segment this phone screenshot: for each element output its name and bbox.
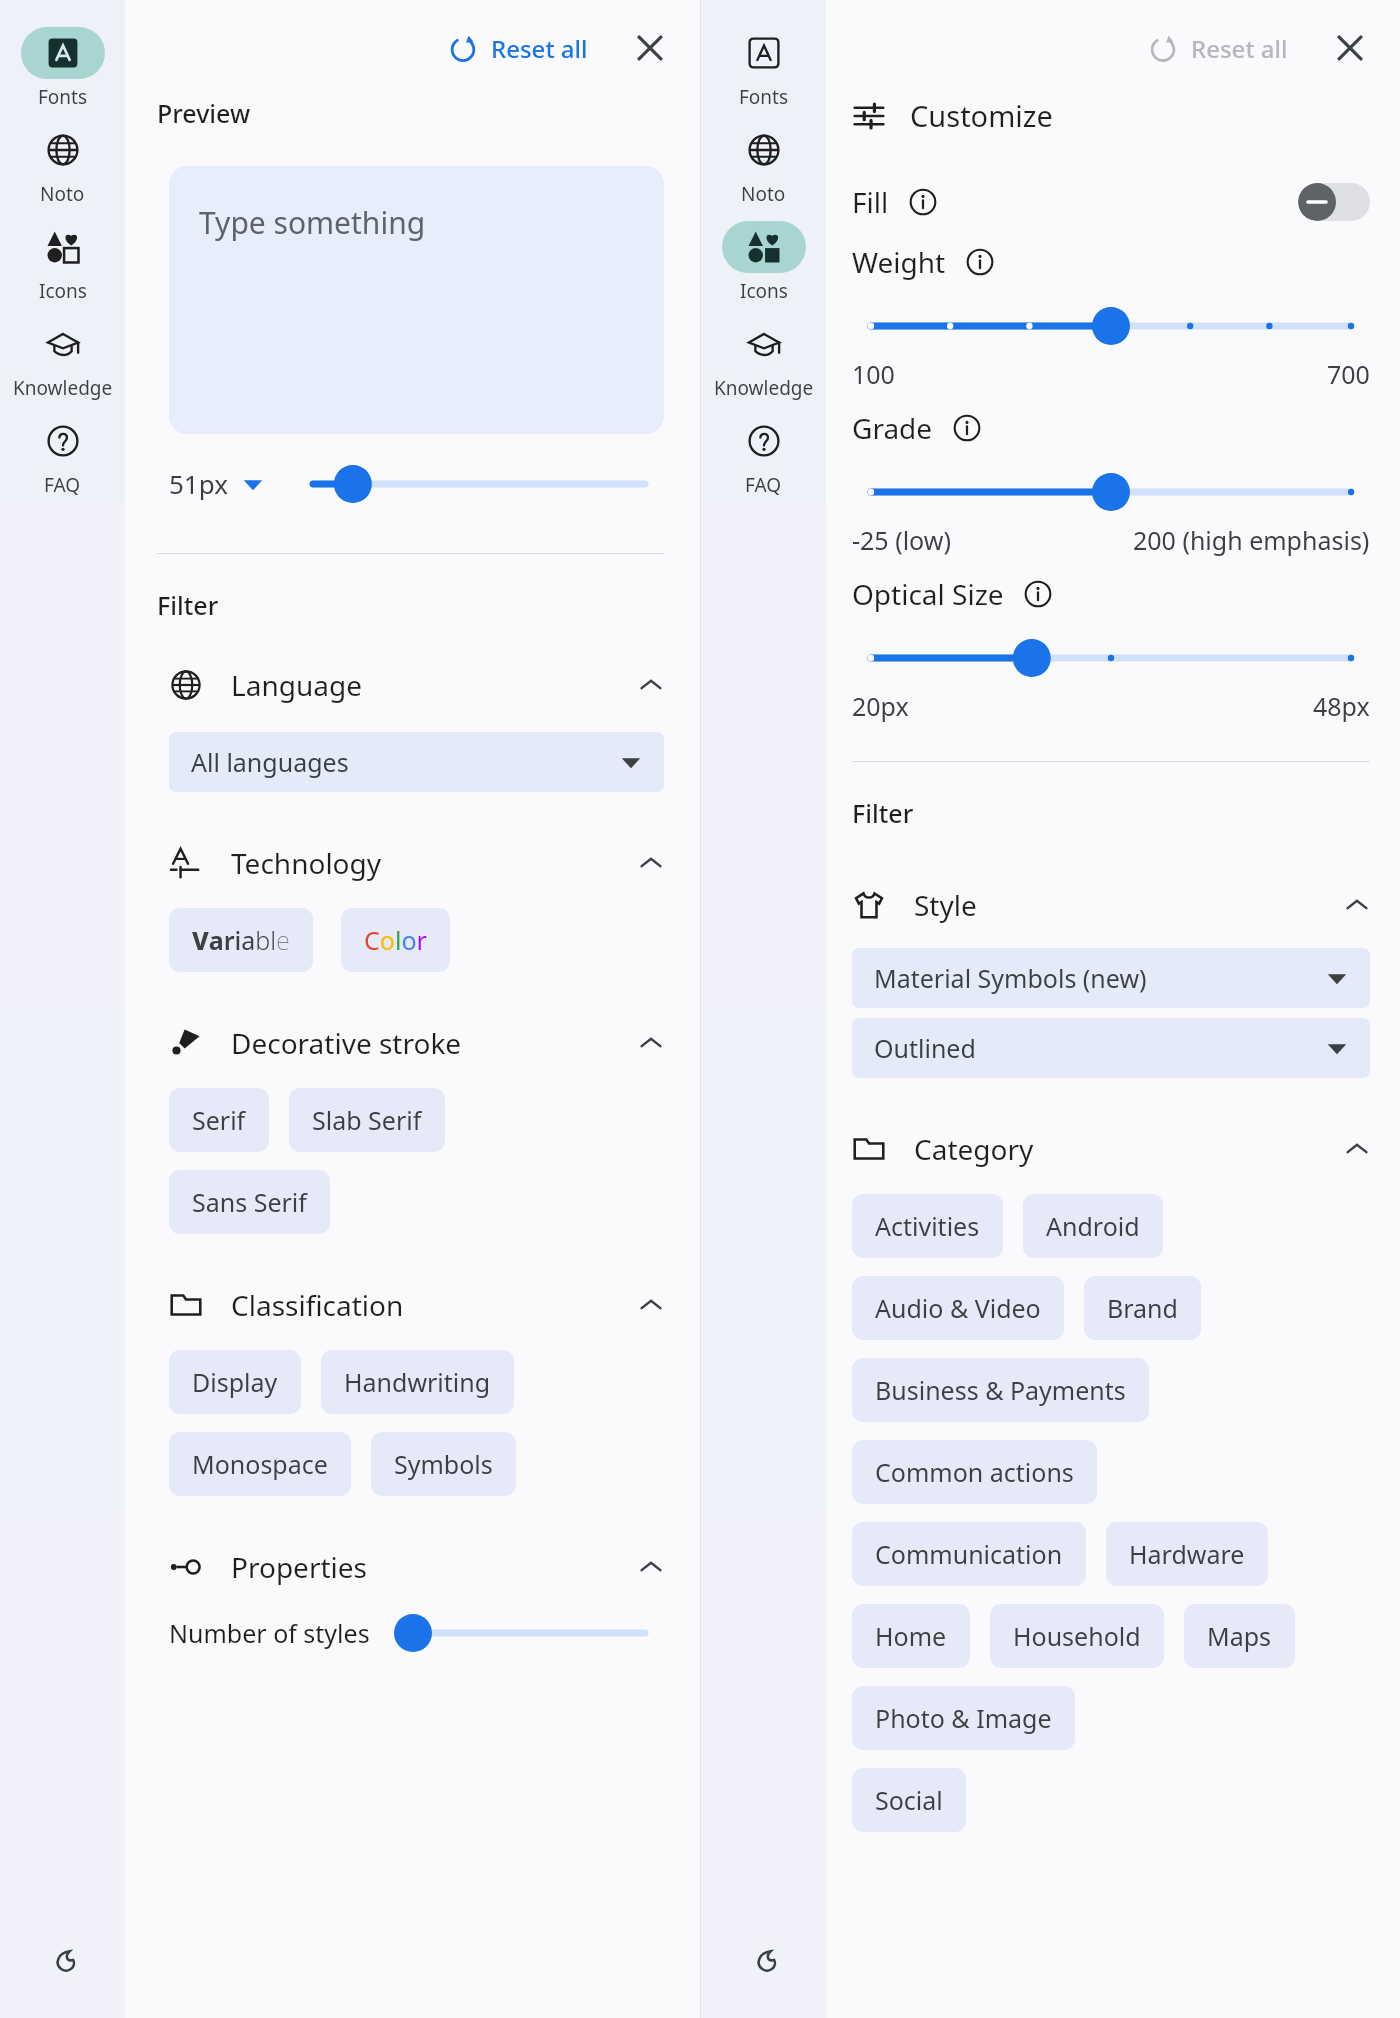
- button[interactable]: Slab Serif: [289, 1088, 445, 1152]
- staticText: FAQ: [745, 472, 782, 498]
- staticText: Business & Payments: [875, 1373, 1126, 1407]
- button[interactable]: Display: [169, 1350, 301, 1414]
- staticText: Fill: [852, 183, 889, 221]
- staticText: Display: [192, 1365, 278, 1399]
- button[interactable]: Sans Serif: [169, 1170, 330, 1234]
- button[interactable]: Optical Size: [852, 575, 1052, 613]
- button[interactable]: Material Symbols (new): [852, 948, 1370, 1008]
- staticText: Noto: [40, 181, 85, 207]
- button[interactable]: Properties: [169, 1548, 664, 1586]
- button[interactable]: Audio & Video: [852, 1276, 1064, 1340]
- button[interactable]: Activities: [852, 1194, 1003, 1258]
- staticText: Activities: [875, 1209, 980, 1243]
- button[interactable]: Type something: [169, 166, 664, 434]
- staticText: Type something: [199, 202, 426, 243]
- button[interactable]: Style: [852, 886, 1370, 924]
- button[interactable]: [852, 475, 1370, 509]
- button[interactable]: All languages: [169, 732, 664, 792]
- staticText: Communication: [875, 1537, 1063, 1571]
- staticText: Monospace: [192, 1447, 328, 1481]
- staticText: Hardware: [1129, 1537, 1245, 1571]
- staticText: 700: [1327, 357, 1370, 391]
- staticText: Classification: [231, 1286, 404, 1324]
- button[interactable]: Symbols: [371, 1432, 516, 1496]
- button[interactable]: Classification: [169, 1286, 664, 1324]
- button[interactable]: Close: [626, 24, 674, 72]
- staticText: Material Symbols (new): [874, 961, 1147, 995]
- button[interactable]: [394, 1616, 664, 1650]
- button[interactable]: [852, 641, 1370, 675]
- button[interactable]: Brand: [1084, 1276, 1201, 1340]
- staticText: Android: [1046, 1209, 1140, 1243]
- button[interactable]: Color: [341, 908, 450, 972]
- button[interactable]: Reset all: [1139, 26, 1296, 71]
- button[interactable]: Icons: [0, 221, 125, 318]
- button[interactable]: 51px: [169, 466, 264, 501]
- staticText: Decorative stroke: [231, 1024, 462, 1062]
- staticText: All languages: [191, 745, 349, 779]
- button[interactable]: Maps: [1184, 1604, 1295, 1668]
- button[interactable]: Social: [852, 1768, 966, 1832]
- staticText: Grade: [852, 409, 933, 447]
- staticText: Icons: [740, 278, 788, 304]
- button[interactable]: Variable: [169, 908, 313, 972]
- button[interactable]: Category: [852, 1130, 1370, 1168]
- button[interactable]: Noto: [0, 124, 125, 221]
- button[interactable]: Language: [169, 666, 664, 704]
- button[interactable]: Business & Payments: [852, 1358, 1149, 1422]
- button[interactable]: FAQ: [0, 415, 125, 512]
- staticText: Weight: [852, 243, 946, 281]
- staticText: FAQ: [44, 472, 81, 498]
- button[interactable]: Dark mode: [736, 1932, 792, 1988]
- button[interactable]: Home: [852, 1604, 970, 1668]
- button[interactable]: Photo & Image: [852, 1686, 1075, 1750]
- button[interactable]: Communication: [852, 1522, 1086, 1586]
- button[interactable]: Weight: [852, 243, 994, 281]
- button[interactable]: Handwriting: [321, 1350, 514, 1414]
- button[interactable]: Close: [1326, 24, 1374, 72]
- button[interactable]: Serif: [169, 1088, 269, 1152]
- button[interactable]: [294, 467, 664, 501]
- staticText: Optical Size: [852, 575, 1004, 613]
- staticText: Fonts: [739, 84, 789, 110]
- staticText: Filter: [157, 588, 219, 622]
- staticText: Symbols: [394, 1447, 493, 1481]
- button[interactable]: Reset all: [439, 26, 596, 71]
- staticText: Common actions: [875, 1455, 1074, 1489]
- staticText: Audio & Video: [875, 1291, 1041, 1325]
- staticText: 200 (high emphasis): [1133, 523, 1370, 557]
- staticText: 48px: [1313, 689, 1370, 723]
- button[interactable]: Household: [990, 1604, 1164, 1668]
- button[interactable]: Dark mode: [35, 1932, 91, 1988]
- staticText: Preview: [157, 96, 251, 130]
- button[interactable]: Hardware: [1106, 1522, 1268, 1586]
- button[interactable]: Grade: [852, 409, 981, 447]
- staticText: Sans Serif: [192, 1185, 307, 1219]
- staticText: Customize: [910, 96, 1053, 135]
- staticText: Reset all: [491, 32, 588, 65]
- button[interactable]: Outlined: [852, 1018, 1370, 1078]
- button[interactable]: Android: [1023, 1194, 1163, 1258]
- button[interactable]: Fill toggle: [1298, 183, 1370, 221]
- button[interactable]: Monospace: [169, 1432, 351, 1496]
- button[interactable]: Fill: [852, 183, 1370, 221]
- button[interactable]: Icons: [701, 221, 826, 318]
- staticText: Reset all: [1191, 32, 1288, 65]
- staticText: Icons: [39, 278, 87, 304]
- button[interactable]: Decorative stroke: [169, 1024, 664, 1062]
- button[interactable]: Technology: [169, 844, 664, 882]
- staticText: Color: [364, 923, 427, 957]
- button[interactable]: Knowledge: [0, 318, 125, 415]
- button[interactable]: [852, 309, 1370, 343]
- staticText: Language: [231, 666, 362, 704]
- staticText: Noto: [741, 181, 786, 207]
- button[interactable]: Fonts: [0, 27, 125, 124]
- button[interactable]: Common actions: [852, 1440, 1097, 1504]
- staticText: Home: [875, 1619, 947, 1653]
- button[interactable]: Fonts: [701, 27, 826, 124]
- button[interactable]: Knowledge: [701, 318, 826, 415]
- staticText: Handwriting: [344, 1365, 491, 1399]
- button[interactable]: Customize: [852, 96, 1053, 135]
- button[interactable]: FAQ: [701, 415, 826, 512]
- button[interactable]: Noto: [701, 124, 826, 221]
